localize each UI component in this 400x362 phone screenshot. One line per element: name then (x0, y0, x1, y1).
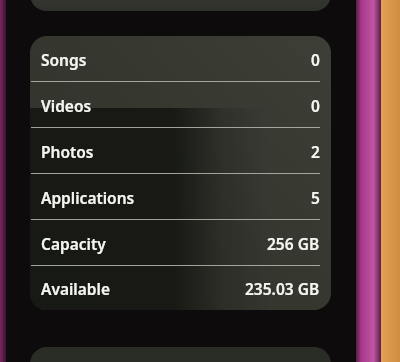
button[interactable]: Capacity (30, 220, 331, 266)
button[interactable]: Available (30, 266, 331, 310)
staticText: Available (41, 278, 110, 299)
staticText: 2 (311, 141, 320, 162)
staticText: Songs (41, 49, 87, 70)
staticText: Capacity (41, 233, 106, 254)
staticText: Photos (41, 141, 94, 162)
button[interactable]: Applications (30, 174, 331, 220)
staticText: 235.03 GB (245, 278, 320, 299)
staticText: 256 GB (267, 233, 320, 254)
staticText: Applications (41, 187, 135, 208)
staticText: 0 (311, 95, 320, 116)
button[interactable]: Photos (30, 128, 331, 174)
staticText: 5 (311, 187, 320, 208)
button[interactable]: Songs (30, 36, 331, 82)
staticText: Videos (41, 95, 92, 116)
staticText: 0 (311, 49, 320, 70)
button[interactable]: Videos (30, 82, 331, 128)
